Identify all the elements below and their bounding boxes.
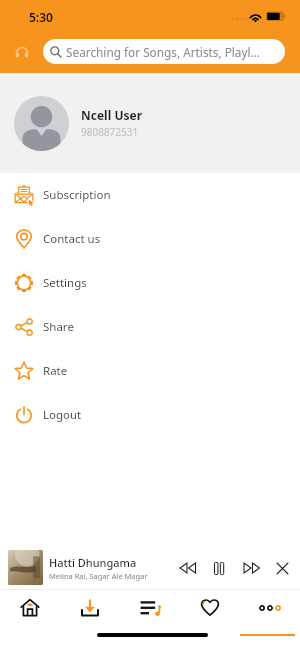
button[interactable]: Next — [238, 555, 264, 581]
staticText: Share — [43, 319, 74, 335]
button[interactable]: More — [240, 590, 300, 625]
staticText: Rate — [43, 363, 68, 379]
button[interactable]: Home — [0, 590, 60, 625]
button[interactable]: Share — [0, 305, 300, 349]
staticText: Hatti Dhungama — [49, 555, 137, 570]
button[interactable]: Ncell User — [0, 73, 300, 173]
staticText: Settings — [43, 275, 87, 291]
button[interactable]: Close — [269, 555, 295, 581]
button[interactable]: Settings — [0, 261, 300, 305]
staticText: Melina Rai, Sagar Ale Magar — [49, 571, 148, 581]
button[interactable]: Rate — [0, 349, 300, 393]
button[interactable]: Logout — [0, 393, 300, 437]
button[interactable]: Previous — [174, 555, 200, 581]
button[interactable]: Playlist — [120, 590, 180, 625]
button[interactable]: Contact us — [0, 217, 300, 261]
button[interactable]: Subscription — [0, 173, 300, 217]
button[interactable]: Favorites — [180, 590, 240, 625]
button[interactable]: Downloads — [60, 590, 120, 625]
staticText: Contact us — [43, 231, 101, 247]
staticText: Searching for Songs, Artists, Playl... — [66, 44, 261, 60]
staticText: Logout — [43, 407, 82, 423]
staticText: 9808872531 — [81, 125, 139, 139]
staticText: Subscription — [43, 187, 111, 203]
button[interactable]: Headphones — [0, 39, 43, 64]
button[interactable]: Searching for Songs, Artists, Playl... — [43, 39, 285, 64]
button[interactable]: Pause — [206, 555, 232, 581]
staticText: Ncell User — [81, 107, 143, 123]
staticText: 5:30 — [29, 9, 53, 25]
